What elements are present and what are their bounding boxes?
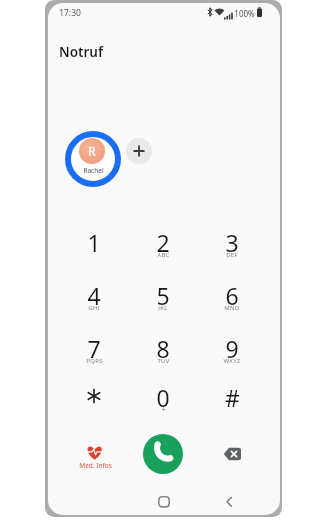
staticText: 3 xyxy=(225,227,239,258)
button[interactable]: Med. Infos xyxy=(70,438,120,472)
staticText: R xyxy=(88,143,96,160)
staticText: 5 xyxy=(156,280,170,311)
button[interactable]: 2 xyxy=(133,220,193,266)
button[interactable] xyxy=(218,490,242,514)
button[interactable]: 6 xyxy=(202,273,262,319)
button[interactable]: 1 xyxy=(64,220,124,266)
button[interactable] xyxy=(214,440,250,468)
button[interactable]: 4 xyxy=(64,273,124,319)
staticText: 9 xyxy=(225,333,239,364)
staticText: ABC xyxy=(157,251,170,259)
staticText: DEF xyxy=(226,251,238,259)
staticText: GHI xyxy=(88,304,100,312)
staticText: Notruf xyxy=(59,43,103,61)
staticText: 100% xyxy=(234,8,255,19)
staticText: + xyxy=(161,405,166,415)
button[interactable] xyxy=(143,434,183,474)
button[interactable]: 8 xyxy=(133,326,193,372)
staticText: 17:30 xyxy=(59,7,81,19)
staticText: Rachel xyxy=(83,166,104,175)
button[interactable]: 5 xyxy=(133,273,193,319)
button[interactable]: R xyxy=(64,130,122,188)
staticText: 7 xyxy=(87,333,101,364)
staticText: 1 xyxy=(87,227,101,258)
staticText: 8 xyxy=(156,333,170,364)
button[interactable]: 0 xyxy=(133,375,193,421)
button[interactable] xyxy=(152,490,176,514)
staticText: PQRS xyxy=(86,357,103,365)
staticText: WXYZ xyxy=(223,357,241,365)
staticText: 6 xyxy=(225,280,239,311)
staticText: 2 xyxy=(156,227,170,258)
staticText: 4 xyxy=(87,280,101,311)
staticText: JKL xyxy=(158,304,168,312)
staticText: TUV xyxy=(157,357,170,365)
staticText: # xyxy=(225,382,240,413)
staticText: Med. Infos xyxy=(79,461,112,470)
button[interactable]: 9 xyxy=(202,326,262,372)
button[interactable]: 3 xyxy=(202,220,262,266)
staticText: MNO xyxy=(224,304,240,312)
button[interactable]: 7 xyxy=(64,326,124,372)
staticText: 0 xyxy=(156,382,170,413)
button[interactable] xyxy=(126,138,152,164)
button[interactable] xyxy=(64,375,124,421)
button[interactable]: # xyxy=(202,375,262,421)
